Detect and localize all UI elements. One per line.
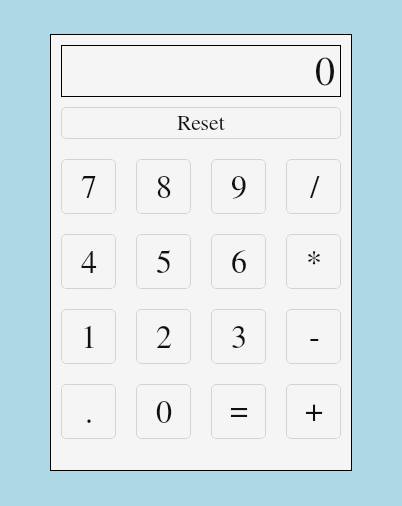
button[interactable]: 4 <box>61 234 116 289</box>
staticText: . <box>85 397 94 429</box>
button[interactable]: + <box>286 384 341 439</box>
staticText: Reset <box>177 112 225 134</box>
button[interactable]: - <box>286 309 341 364</box>
staticText: 7 <box>81 172 98 204</box>
button[interactable]: . <box>61 384 116 439</box>
staticText: 0 <box>315 53 335 93</box>
staticText: 4 <box>81 247 98 279</box>
button[interactable]: 1 <box>61 309 116 364</box>
staticText: 8 <box>156 172 173 204</box>
button[interactable]: Reset <box>61 107 341 139</box>
button[interactable]: / <box>286 159 341 214</box>
button[interactable]: 3 <box>211 309 266 364</box>
button[interactable]: * <box>286 234 341 289</box>
button[interactable]: 2 <box>136 309 191 364</box>
staticText: 6 <box>231 247 248 279</box>
button[interactable]: 5 <box>136 234 191 289</box>
staticText: / <box>310 172 320 204</box>
staticText: 5 <box>156 247 173 279</box>
staticText: - <box>309 321 320 353</box>
button[interactable]: 0 <box>136 384 191 439</box>
button[interactable]: = <box>211 384 266 439</box>
staticText: 9 <box>231 172 248 204</box>
staticText: * <box>306 247 323 279</box>
staticText: = <box>230 395 249 427</box>
button[interactable]: 6 <box>211 234 266 289</box>
staticText: 0 <box>156 397 173 429</box>
button[interactable]: 7 <box>61 159 116 214</box>
button[interactable]: 8 <box>136 159 191 214</box>
staticText: + <box>305 395 324 427</box>
staticText: 3 <box>231 322 248 354</box>
staticText: 1 <box>81 322 98 354</box>
button[interactable]: 9 <box>211 159 266 214</box>
staticText: 2 <box>156 322 173 354</box>
